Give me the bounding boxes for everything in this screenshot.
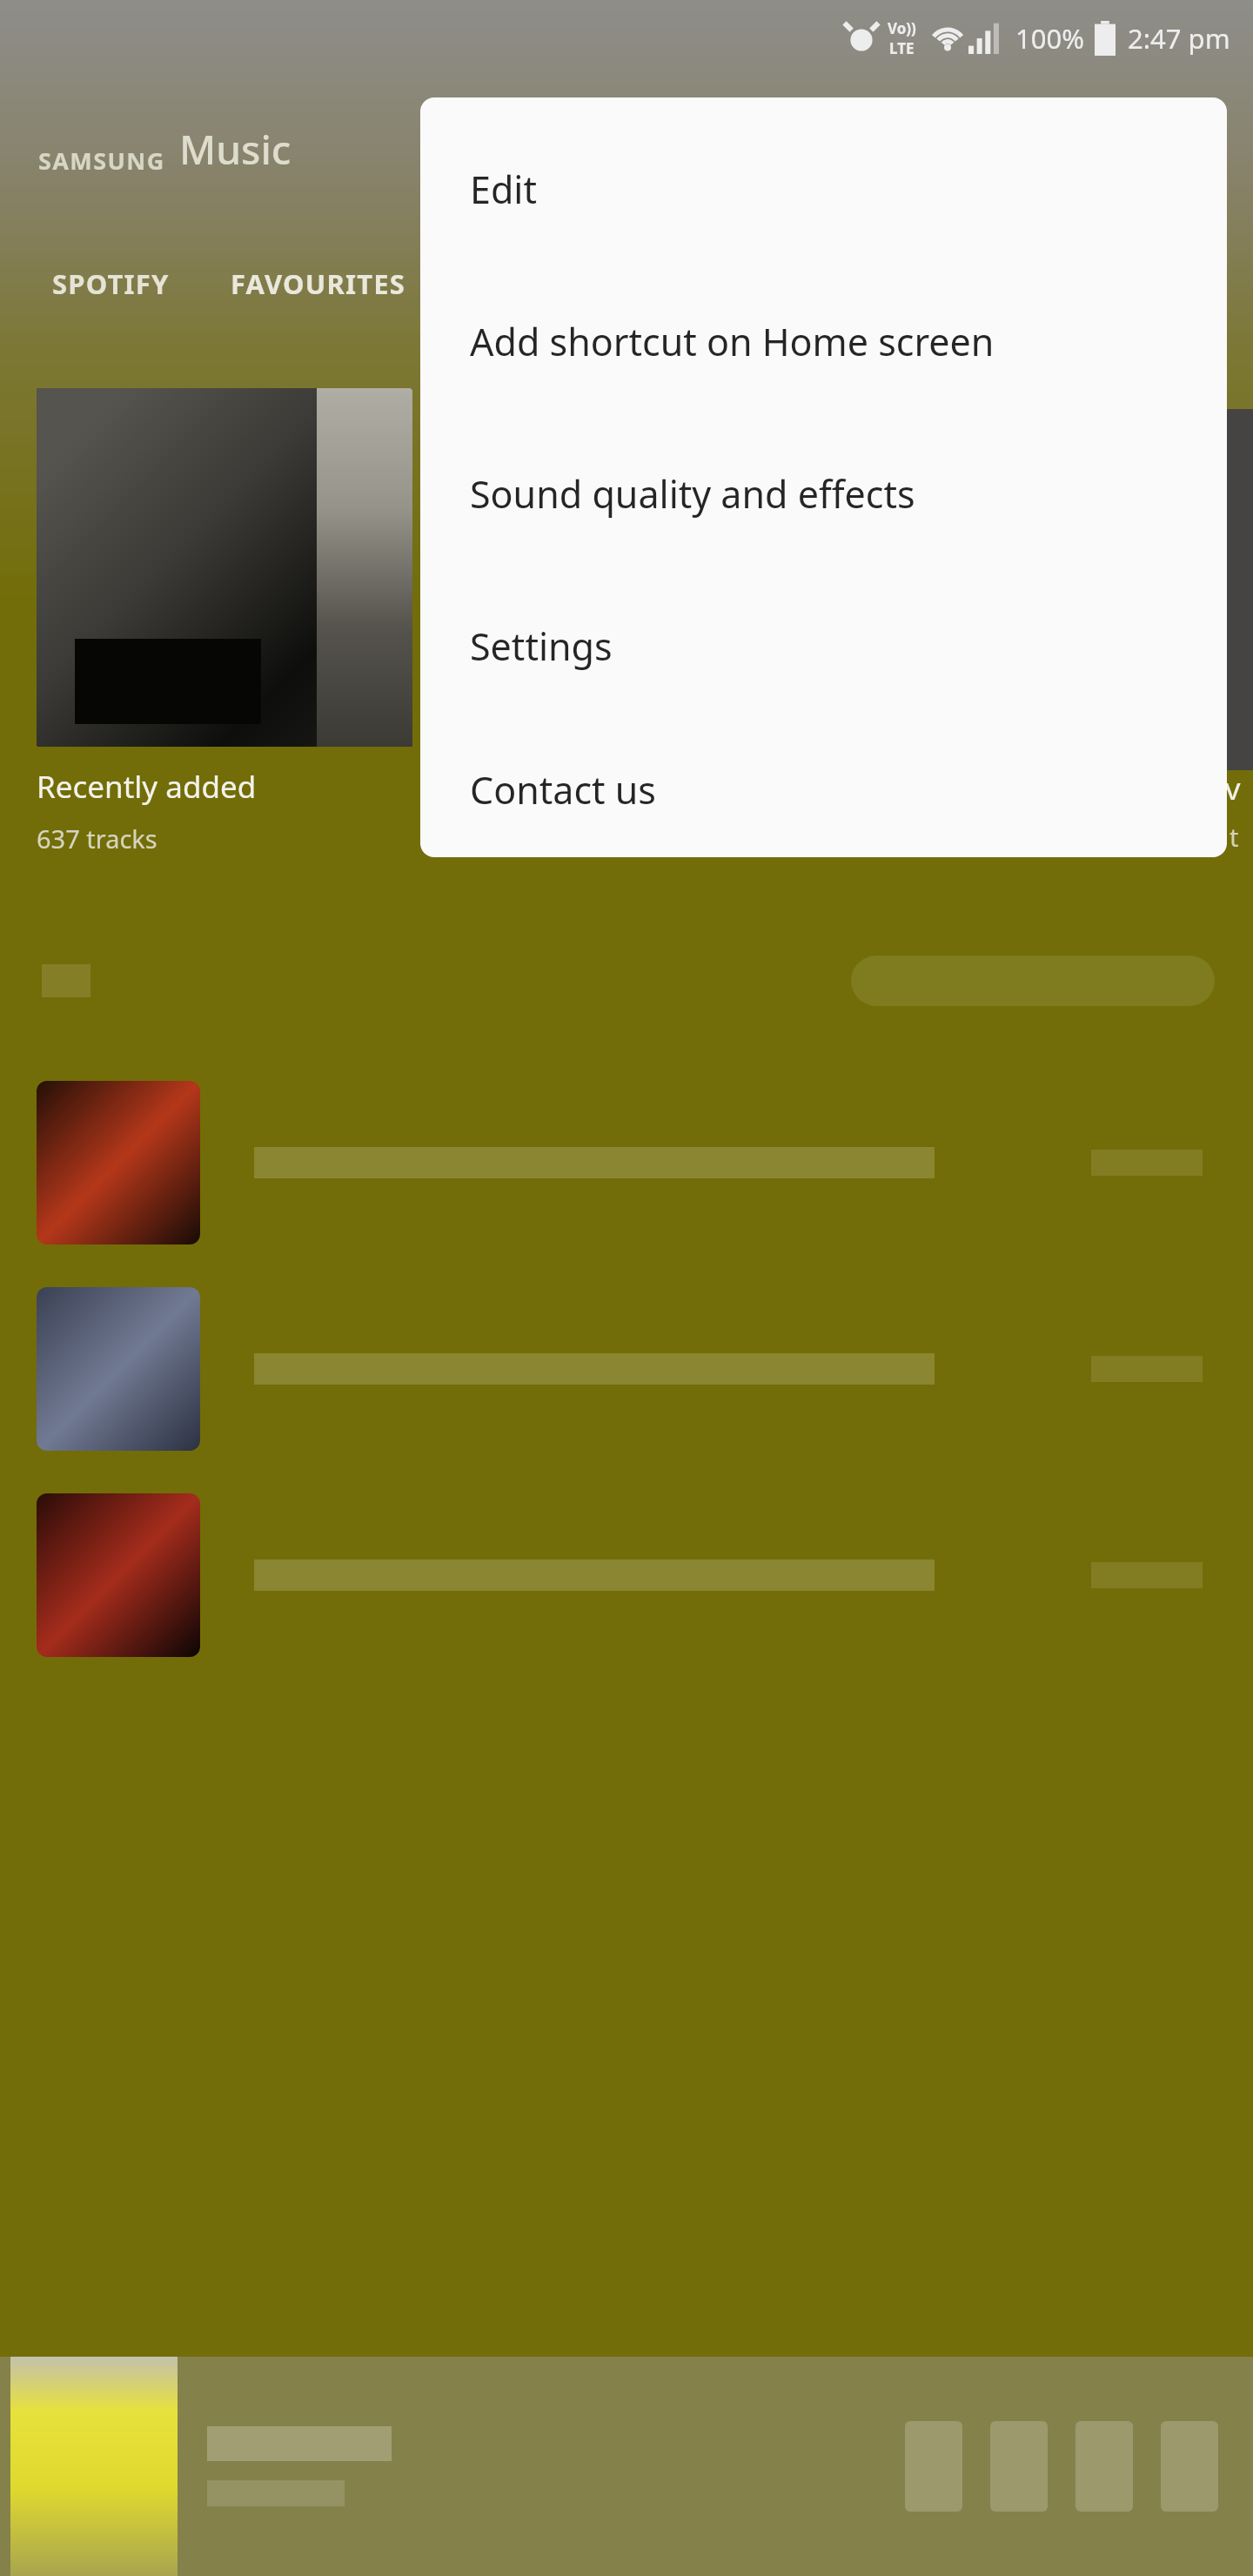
button[interactable]: Settings <box>420 570 1227 722</box>
staticText: Add shortcut on Home screen <box>470 316 995 367</box>
button[interactable]: Add shortcut on Home screen <box>420 265 1227 418</box>
staticText: Edit <box>470 164 537 215</box>
staticText: 2:47 pm <box>1128 20 1230 57</box>
staticText: 637 tracks <box>37 822 157 855</box>
button[interactable]: Sound quality and effects <box>420 418 1227 570</box>
button[interactable] <box>0 1284 1253 1454</box>
button[interactable] <box>1206 409 1253 770</box>
staticText: SPOTIFY <box>52 265 170 302</box>
button[interactable]: Next <box>1075 2421 1133 2512</box>
staticText: o t <box>1208 820 1239 854</box>
button[interactable] <box>0 1077 1253 1248</box>
button[interactable] <box>0 1490 1253 1660</box>
button[interactable]: Contact us <box>420 722 1227 857</box>
button[interactable]: Queue <box>1161 2421 1218 2512</box>
button[interactable]: Play <box>990 2421 1048 2512</box>
staticText: Recently added <box>37 766 257 808</box>
button[interactable]: Edit <box>420 113 1227 265</box>
staticText: Sound quality and effects <box>470 468 915 520</box>
staticText: 100% <box>1015 20 1084 57</box>
button[interactable] <box>851 956 1215 1006</box>
button[interactable]: Previous <box>905 2421 962 2512</box>
staticText: LTE <box>889 38 915 58</box>
button[interactable] <box>10 2357 178 2576</box>
button[interactable] <box>37 388 412 747</box>
staticText: av <box>1208 768 1241 809</box>
staticText: Vo)) <box>888 18 916 38</box>
staticText: Settings <box>470 621 613 672</box>
staticText: Contact us <box>470 764 656 815</box>
staticText: Music <box>179 122 291 177</box>
staticText: SAMSUNG <box>38 144 165 177</box>
staticText: FAVOURITES <box>231 265 406 302</box>
